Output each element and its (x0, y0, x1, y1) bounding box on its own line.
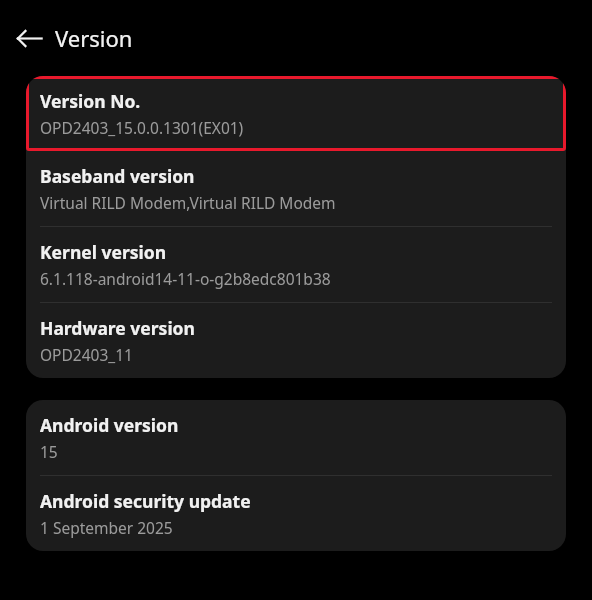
staticText: Baseband version (40, 164, 195, 188)
button[interactable]: Kernel version (26, 227, 566, 302)
staticText: Virtual RILD Modem,Virtual RILD Modem (40, 192, 336, 213)
button[interactable]: Android security update (26, 476, 566, 551)
button[interactable]: Baseband version (26, 151, 566, 226)
staticText: Android security update (40, 489, 251, 513)
staticText: Hardware version (40, 316, 195, 340)
button[interactable]: Version No. (26, 76, 566, 151)
button[interactable]: Android version (26, 400, 566, 475)
staticText: Version (55, 23, 133, 53)
button[interactable]: Back (6, 15, 52, 61)
staticText: Kernel version (40, 240, 167, 264)
staticText: OPD2403_15.0.0.1301(EX01) (40, 117, 244, 138)
staticText: 6.1.118-android14-11-o-g2b8edc801b38 (40, 268, 331, 289)
staticText: 15 (40, 441, 58, 462)
staticText: OPD2403_11 (40, 344, 133, 365)
staticText: Android version (40, 413, 179, 437)
staticText: Version No. (40, 89, 141, 113)
button[interactable]: Hardware version (26, 303, 566, 378)
staticText: 1 September 2025 (40, 517, 173, 538)
